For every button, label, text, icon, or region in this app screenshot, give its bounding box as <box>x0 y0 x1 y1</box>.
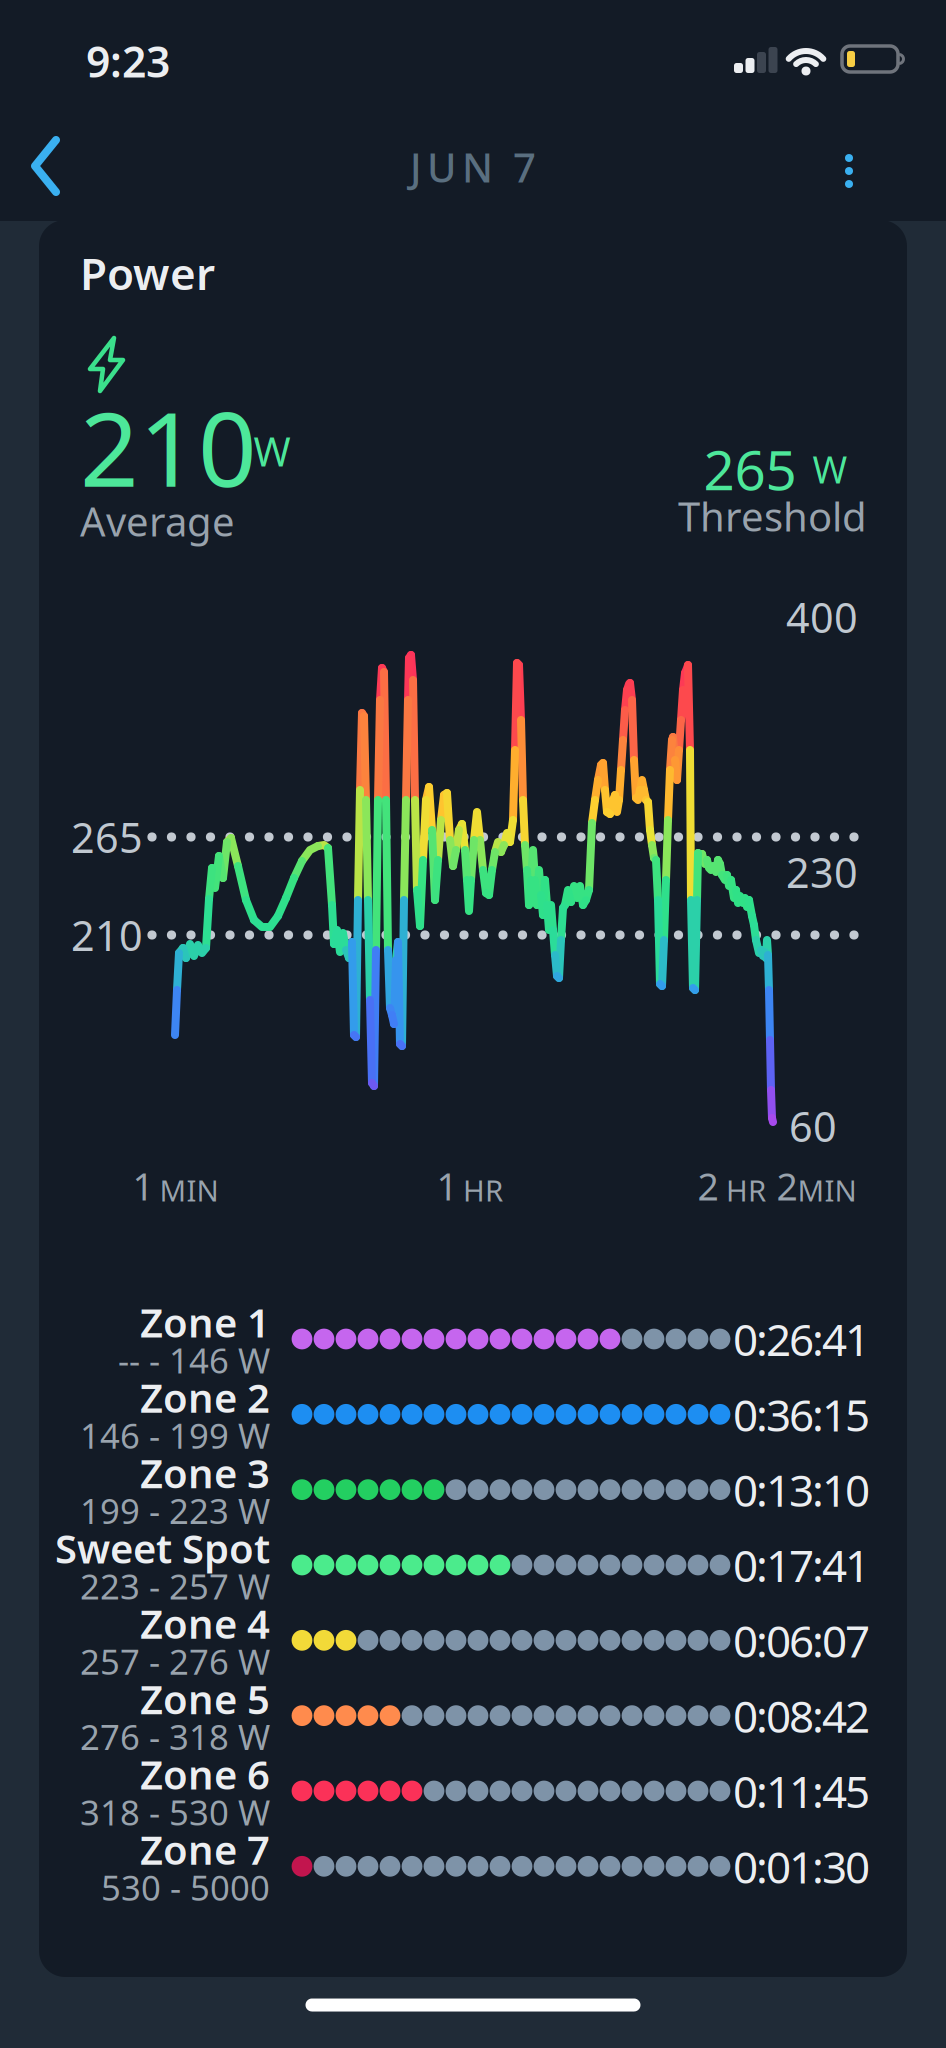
staticText: 146 - 199 W <box>80 1412 270 1458</box>
staticText: 223 - 257 W <box>80 1563 270 1609</box>
button[interactable]: More options <box>0 0 946 2048</box>
button[interactable]: Back <box>0 0 946 2048</box>
staticText: 230 <box>786 845 858 899</box>
staticText: 2 <box>697 1161 718 1211</box>
staticText: Threshold <box>678 489 867 542</box>
staticText: 265 <box>71 810 143 864</box>
staticText: 0:17:41 <box>733 1536 870 1594</box>
staticText: HR <box>726 1170 766 1209</box>
staticText: 276 - 318 W <box>80 1714 270 1760</box>
staticText: 0:26:41 <box>733 1310 870 1368</box>
staticText: 0:13:10 <box>733 1460 870 1519</box>
staticText: W <box>253 424 290 477</box>
staticText: 257 - 276 W <box>80 1638 270 1684</box>
staticText: Zone 3 <box>140 1446 270 1499</box>
staticText: W <box>812 444 847 494</box>
staticText: 210 <box>71 908 143 962</box>
staticText: MIN <box>797 1170 856 1209</box>
staticText: 0:36:15 <box>733 1385 870 1443</box>
staticText: 199 - 223 W <box>80 1488 270 1534</box>
staticText: Sweet Spot <box>55 1521 270 1574</box>
staticText: 2 <box>776 1161 797 1211</box>
staticText: 210 <box>80 379 257 515</box>
staticText: 0:01:30 <box>733 1837 870 1895</box>
staticText: Zone 6 <box>140 1747 270 1800</box>
staticText: Zone 5 <box>140 1672 270 1725</box>
staticText: Average <box>80 494 235 547</box>
staticText: 530 - 5000 <box>101 1864 270 1910</box>
staticText: 318 - 530 W <box>80 1789 270 1835</box>
staticText: 9:23 <box>86 33 170 89</box>
staticText: -- - 146 W <box>118 1337 270 1383</box>
staticText: 0:11:45 <box>733 1762 870 1820</box>
staticText: Zone 7 <box>140 1823 270 1876</box>
staticText: Zone 4 <box>140 1597 270 1650</box>
staticText: Zone 2 <box>140 1371 270 1424</box>
staticText: 265 <box>703 433 796 505</box>
staticText: 0:08:42 <box>733 1686 870 1745</box>
staticText: MIN <box>159 1170 218 1209</box>
staticText: HR <box>463 1170 503 1209</box>
staticText: JUN 7 <box>410 140 536 193</box>
staticText: 400 <box>786 590 858 644</box>
staticText: Zone 1 <box>140 1295 270 1348</box>
staticText: 1 <box>132 1161 153 1211</box>
staticText: 60 <box>789 1099 837 1153</box>
staticText: 0:06:07 <box>733 1611 870 1669</box>
staticText: Power <box>80 244 215 302</box>
staticText: 1 <box>436 1161 457 1211</box>
